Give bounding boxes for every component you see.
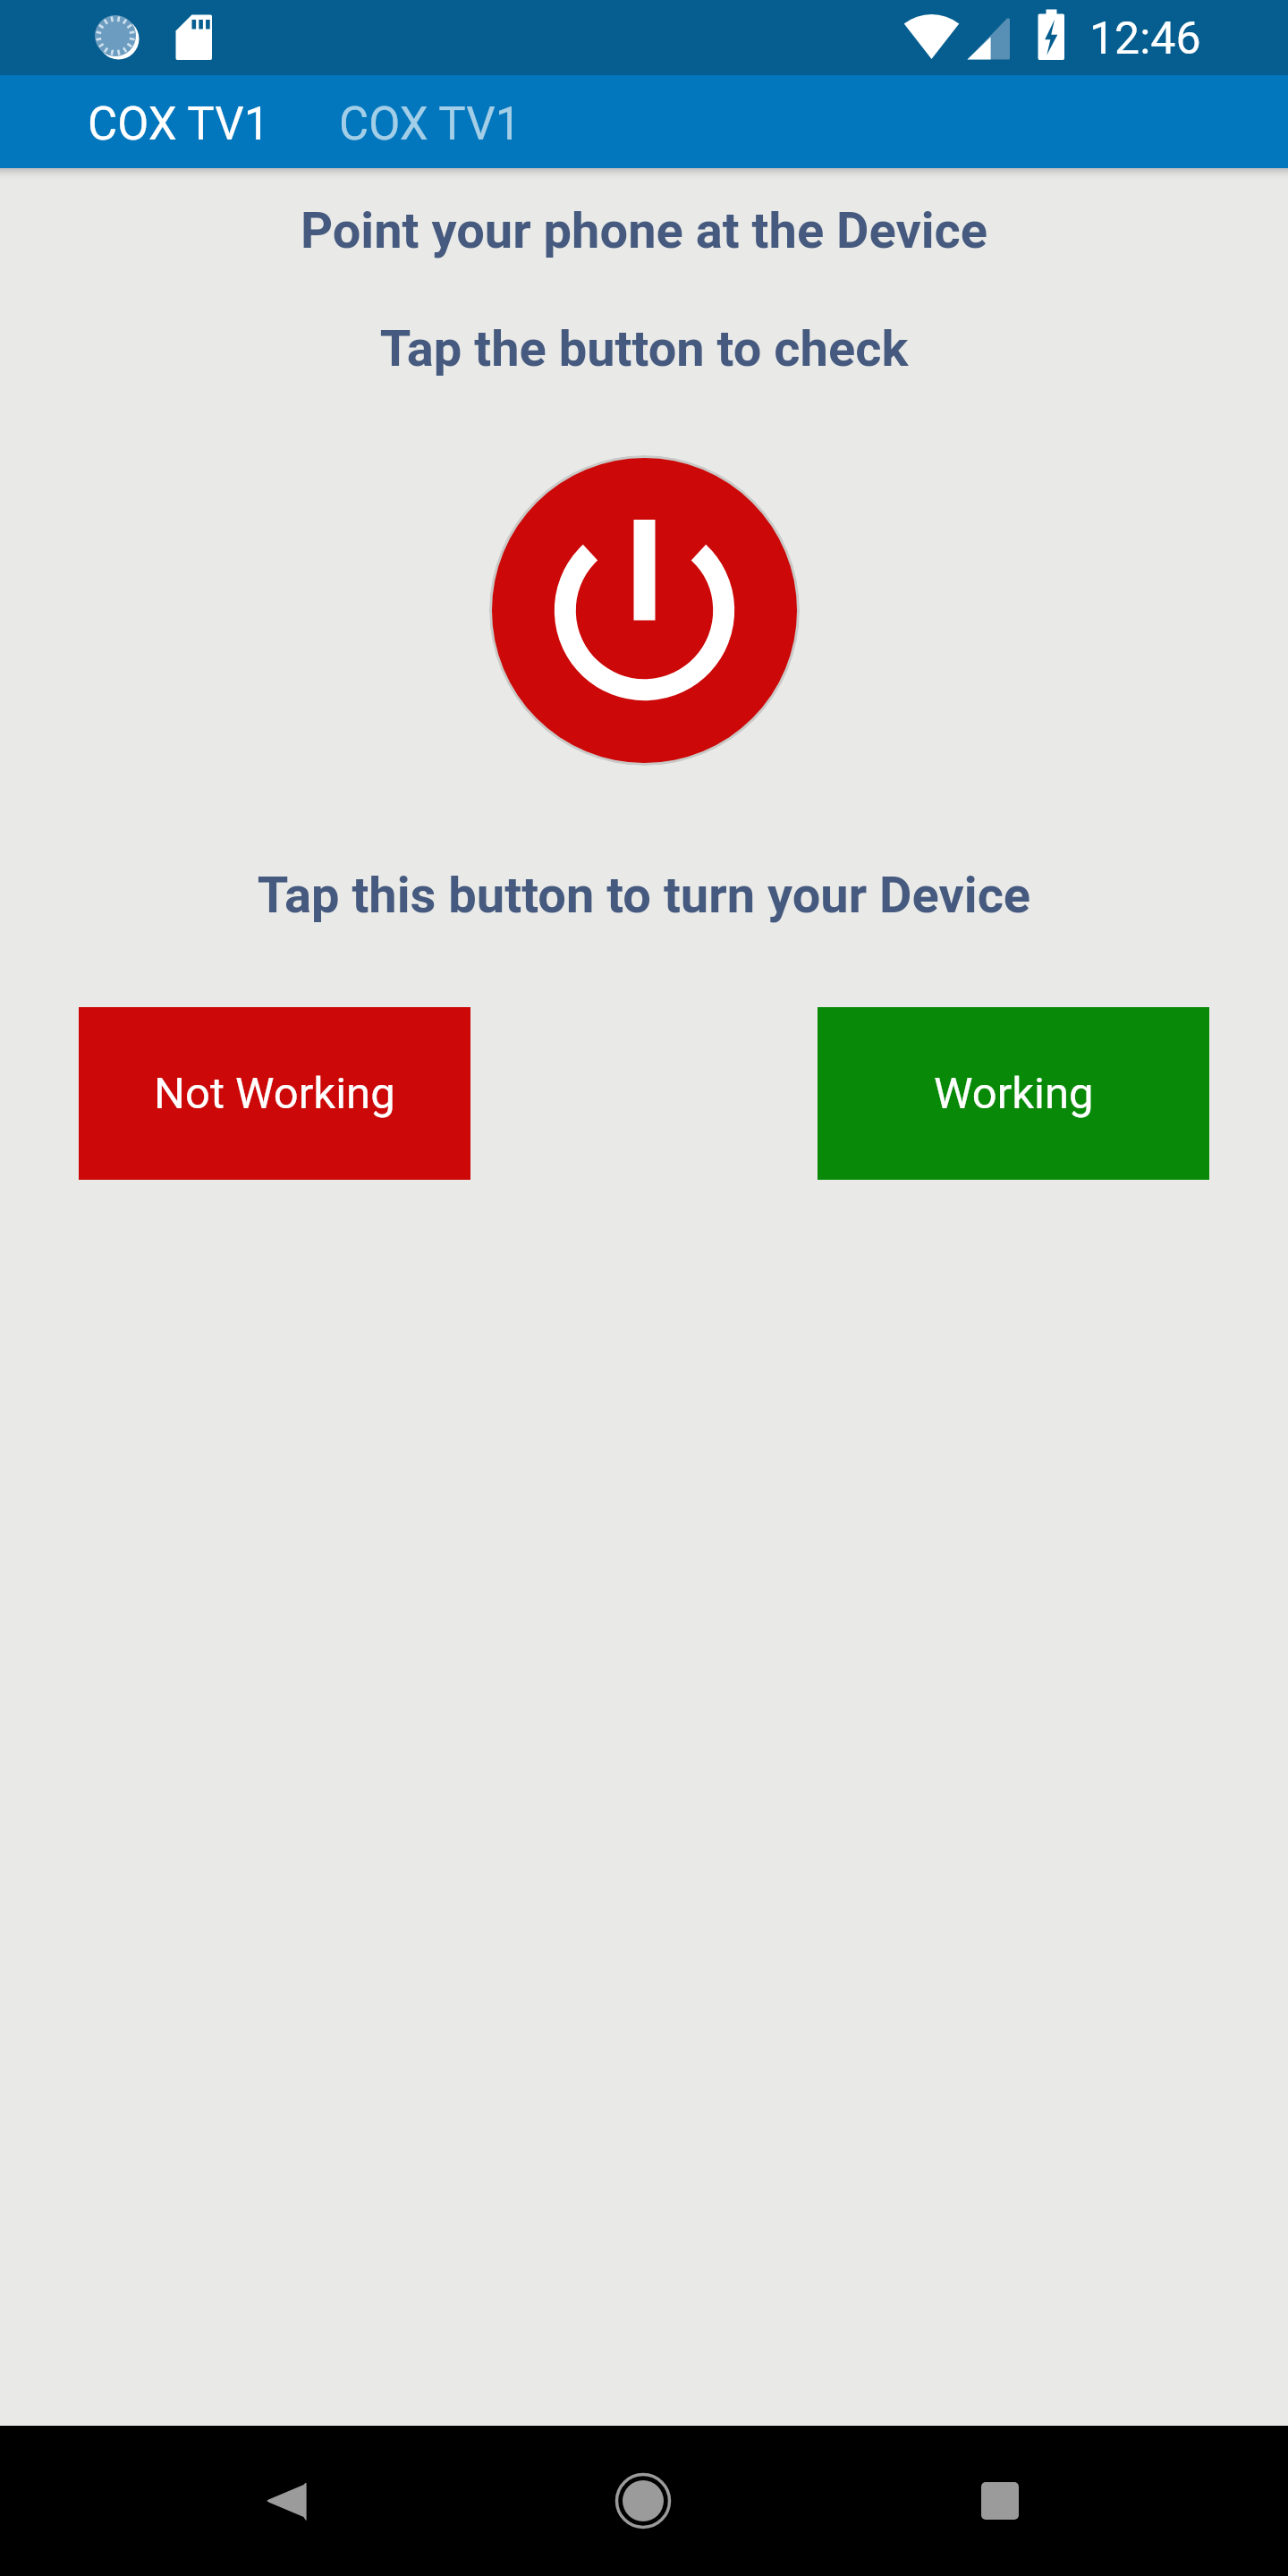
button[interactable]: Home bbox=[580, 2438, 706, 2563]
staticText: Not Working bbox=[154, 1068, 395, 1119]
staticText: Tap the button to check bbox=[0, 319, 1288, 378]
button[interactable]: Power bbox=[489, 455, 800, 766]
staticText: COX TV1 bbox=[88, 97, 270, 151]
button[interactable]: Recents bbox=[937, 2438, 1063, 2563]
staticText: Working bbox=[934, 1068, 1094, 1119]
button[interactable]: Working bbox=[818, 1007, 1209, 1180]
button[interactable]: Not Working bbox=[79, 1007, 470, 1180]
staticText: Tap this button to turn your Device bbox=[0, 866, 1288, 925]
staticText: Point your phone at the Device bbox=[0, 201, 1288, 260]
staticText: 12:46 bbox=[1089, 13, 1201, 65]
button[interactable]: Back bbox=[225, 2438, 350, 2563]
staticText: COX TV1 bbox=[339, 97, 521, 151]
